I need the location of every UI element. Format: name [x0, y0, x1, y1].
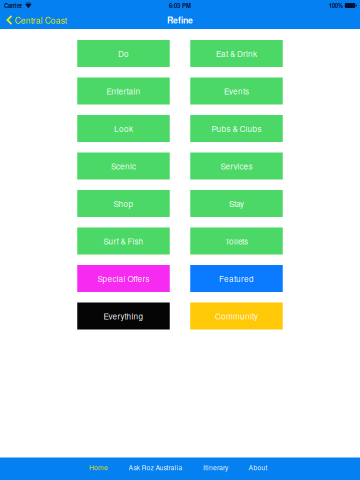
button[interactable]: Home — [89, 457, 108, 480]
staticText: Ask Roz Australia — [128, 462, 182, 472]
button[interactable]: Everything — [77, 302, 170, 329]
staticText: Look — [114, 123, 133, 134]
button[interactable]: Central Coast — [0, 11, 73, 29]
staticText: 100% — [329, 1, 343, 10]
staticText: Shop — [113, 198, 133, 209]
staticText: Surf & Fish — [103, 235, 143, 247]
staticText: Entertain — [106, 85, 140, 97]
button[interactable]: Special Offers — [77, 265, 170, 292]
staticText: Itinerary — [203, 462, 228, 472]
staticText: Carrier — [4, 1, 22, 10]
staticText: Home — [89, 462, 108, 472]
button[interactable]: Ask Roz Australia — [128, 457, 182, 480]
staticText: Special Offers — [97, 273, 149, 284]
staticText: Services — [220, 160, 252, 172]
staticText: Central Coast — [15, 14, 67, 26]
staticText: Eat & Drink — [216, 48, 257, 59]
button[interactable]: Scenic — [77, 152, 170, 179]
button[interactable]: Featured — [190, 265, 283, 292]
button[interactable]: Surf & Fish — [77, 227, 170, 254]
button[interactable]: Do — [77, 40, 170, 67]
staticText: 6:03 PM — [169, 1, 191, 10]
button[interactable]: Shop — [77, 190, 170, 217]
staticText: Refine — [167, 14, 193, 26]
button[interactable]: Itinerary — [203, 457, 228, 480]
staticText: Events — [224, 85, 249, 97]
button[interactable]: Pubs & Clubs — [190, 115, 283, 142]
button[interactable]: Stay — [190, 190, 283, 217]
staticText: Everything — [103, 310, 143, 322]
staticText: Toilets — [225, 235, 248, 247]
staticText: About — [248, 462, 267, 472]
button[interactable]: Community — [190, 302, 283, 329]
button[interactable]: Toilets — [190, 227, 283, 254]
staticText: Community — [215, 310, 258, 322]
staticText: Stay — [229, 198, 244, 209]
button[interactable]: About — [248, 457, 267, 480]
button[interactable]: Services — [190, 152, 283, 179]
staticText: Pubs & Clubs — [211, 123, 261, 134]
staticText: Do — [118, 48, 129, 59]
staticText: Scenic — [111, 160, 136, 172]
button[interactable]: Entertain — [77, 77, 170, 104]
staticText: Featured — [219, 273, 254, 284]
button[interactable]: Eat & Drink — [190, 40, 283, 67]
button[interactable]: Events — [190, 77, 283, 104]
button[interactable]: Look — [77, 115, 170, 142]
